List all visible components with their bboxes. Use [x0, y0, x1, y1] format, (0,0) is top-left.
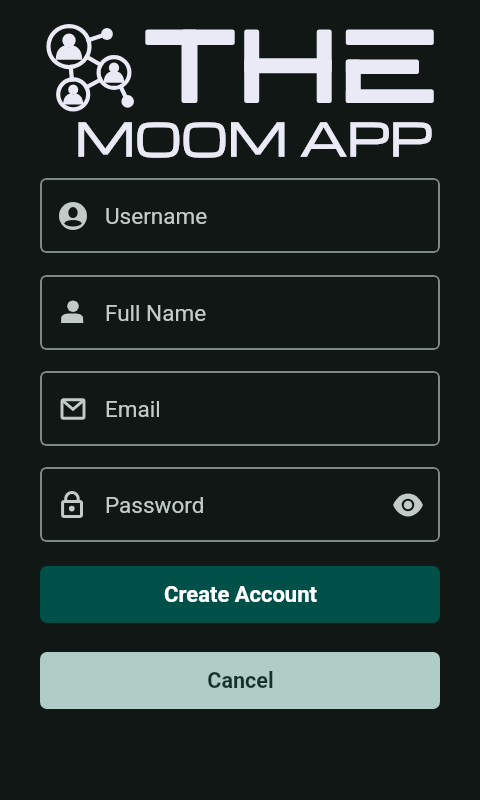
button[interactable]: Password	[40, 467, 440, 542]
staticText: MOOM APP	[75, 105, 433, 168]
button[interactable]: Email	[40, 371, 440, 446]
staticText: Cancel	[207, 668, 274, 693]
staticText: Password	[105, 492, 205, 518]
button[interactable]: Username	[40, 178, 440, 253]
staticText: MOOM APP	[75, 105, 433, 168]
button[interactable]: Show password	[388, 485, 428, 525]
staticText: Full Name	[105, 300, 207, 326]
staticText: Email	[105, 396, 161, 422]
staticText: Create Account	[164, 582, 317, 608]
button[interactable]: Full Name	[40, 275, 440, 350]
button[interactable]: Cancel	[40, 652, 440, 709]
button[interactable]: Create Account	[40, 566, 440, 623]
staticText: Username	[105, 203, 208, 229]
